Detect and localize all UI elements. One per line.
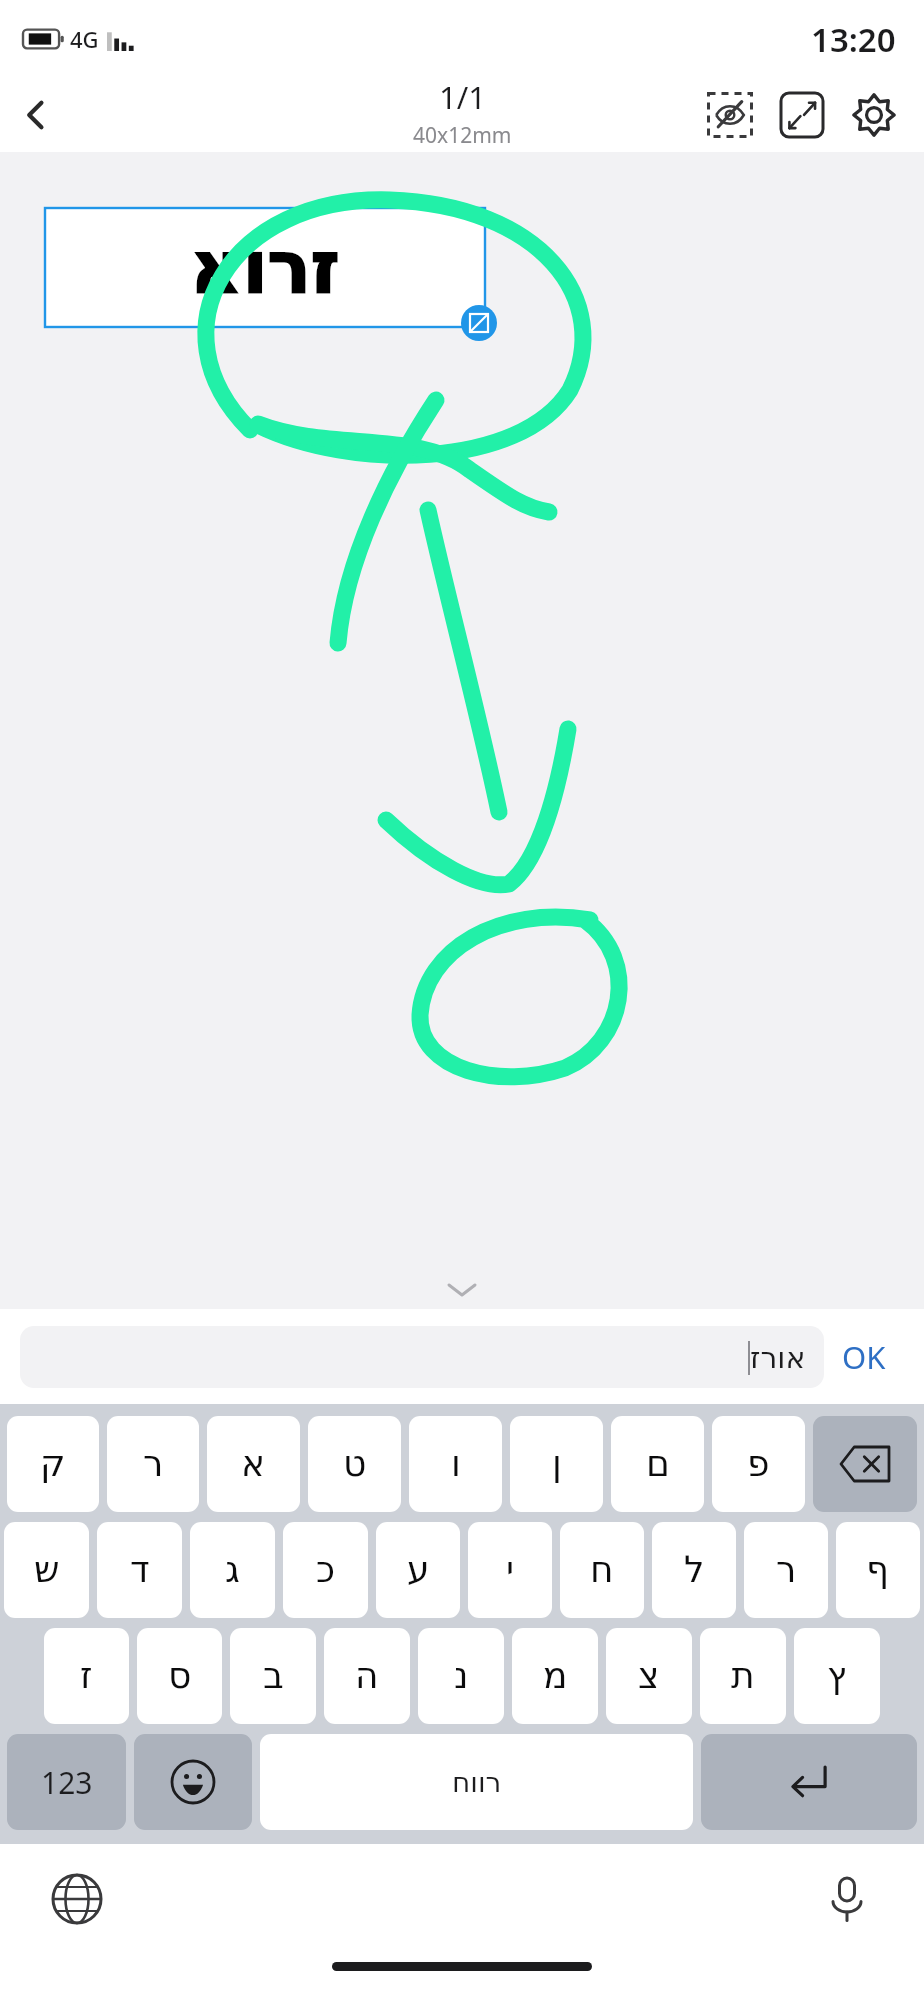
staticText: ב bbox=[263, 1655, 284, 1697]
staticText: 1/1 bbox=[439, 76, 486, 118]
staticText: נ bbox=[454, 1655, 469, 1697]
staticText: כ bbox=[316, 1549, 336, 1591]
button[interactable]: ע bbox=[376, 1522, 460, 1618]
button[interactable]: Change language bbox=[42, 1864, 112, 1934]
staticText: ו bbox=[451, 1443, 461, 1485]
staticText: פ bbox=[747, 1443, 770, 1485]
button[interactable]: Zoom 1.0x bbox=[770, 83, 834, 147]
staticText: ץ bbox=[827, 1655, 847, 1697]
button[interactable]: אורז bbox=[20, 1326, 824, 1388]
button[interactable]: ח bbox=[560, 1522, 644, 1618]
button[interactable]: ס bbox=[137, 1628, 222, 1724]
button[interactable]: Back bbox=[0, 79, 72, 151]
staticText: ש bbox=[34, 1549, 60, 1591]
button[interactable]: ב bbox=[230, 1628, 316, 1724]
button[interactable]: פ bbox=[712, 1416, 805, 1512]
button[interactable]: צ bbox=[606, 1628, 692, 1724]
button[interactable]: ת bbox=[700, 1628, 786, 1724]
staticText: ם bbox=[646, 1443, 670, 1485]
button[interactable]: ל bbox=[652, 1522, 736, 1618]
button[interactable]: ד bbox=[97, 1522, 182, 1618]
button[interactable]: Emoji bbox=[134, 1734, 252, 1830]
staticText: ן bbox=[552, 1443, 562, 1485]
button[interactable]: ם bbox=[611, 1416, 704, 1512]
button[interactable]: נ bbox=[418, 1628, 504, 1724]
button[interactable]: 123 bbox=[7, 1734, 126, 1830]
button[interactable]: ץ bbox=[794, 1628, 880, 1724]
staticText: רווח bbox=[452, 1766, 502, 1799]
staticText: ז bbox=[80, 1655, 93, 1697]
button[interactable]: Backspace bbox=[813, 1416, 917, 1512]
button[interactable]: ר bbox=[107, 1416, 199, 1512]
staticText: ה bbox=[355, 1655, 379, 1697]
staticText: ל bbox=[684, 1549, 705, 1591]
staticText: ת bbox=[731, 1655, 755, 1697]
button[interactable]: ר bbox=[744, 1522, 828, 1618]
button[interactable]: ג bbox=[190, 1522, 275, 1618]
staticText: 40x12mm bbox=[413, 121, 512, 150]
staticText: 123 bbox=[41, 1762, 93, 1803]
staticText: מ bbox=[543, 1655, 568, 1697]
staticText: א bbox=[241, 1443, 266, 1485]
button[interactable]: ף bbox=[836, 1522, 920, 1618]
staticText: ר bbox=[776, 1549, 797, 1591]
staticText: ק bbox=[40, 1443, 66, 1485]
staticText: 13:20 bbox=[811, 17, 896, 62]
button[interactable]: Enter bbox=[701, 1734, 917, 1830]
button[interactable]: זרוא bbox=[45, 208, 485, 327]
button[interactable]: ו bbox=[409, 1416, 502, 1512]
button[interactable]: א bbox=[207, 1416, 300, 1512]
staticText: 4G bbox=[70, 24, 99, 54]
staticText: ס bbox=[168, 1655, 192, 1697]
button[interactable]: OK bbox=[824, 1326, 904, 1388]
staticText: ד bbox=[130, 1549, 150, 1591]
staticText: זרוא bbox=[190, 225, 340, 309]
button[interactable]: Edit element bbox=[461, 305, 497, 341]
button[interactable]: ש bbox=[4, 1522, 89, 1618]
button[interactable]: י bbox=[468, 1522, 552, 1618]
staticText: ף bbox=[866, 1549, 890, 1591]
button[interactable]: ן bbox=[510, 1416, 603, 1512]
staticText: OK bbox=[842, 1336, 886, 1378]
staticText: י bbox=[506, 1549, 515, 1591]
staticText: צ bbox=[638, 1655, 660, 1697]
button[interactable]: ט bbox=[308, 1416, 401, 1512]
staticText: ר bbox=[143, 1443, 164, 1485]
staticText: אורז bbox=[750, 1340, 806, 1375]
button[interactable]: רווח bbox=[260, 1734, 693, 1830]
staticText: ג bbox=[225, 1549, 240, 1591]
button[interactable]: מ bbox=[512, 1628, 598, 1724]
staticText: ח bbox=[590, 1549, 614, 1591]
button[interactable]: ק bbox=[7, 1416, 99, 1512]
button[interactable]: Collapse bbox=[434, 1275, 490, 1305]
button[interactable]: ה bbox=[324, 1628, 410, 1724]
staticText: ט bbox=[343, 1443, 367, 1485]
button[interactable]: Settings bbox=[842, 83, 906, 147]
button[interactable]: כ bbox=[283, 1522, 368, 1618]
staticText: ע bbox=[407, 1549, 430, 1591]
button[interactable]: Toggle preview bbox=[698, 83, 762, 147]
button[interactable]: Voice input bbox=[812, 1864, 882, 1934]
button[interactable]: ז bbox=[44, 1628, 129, 1724]
